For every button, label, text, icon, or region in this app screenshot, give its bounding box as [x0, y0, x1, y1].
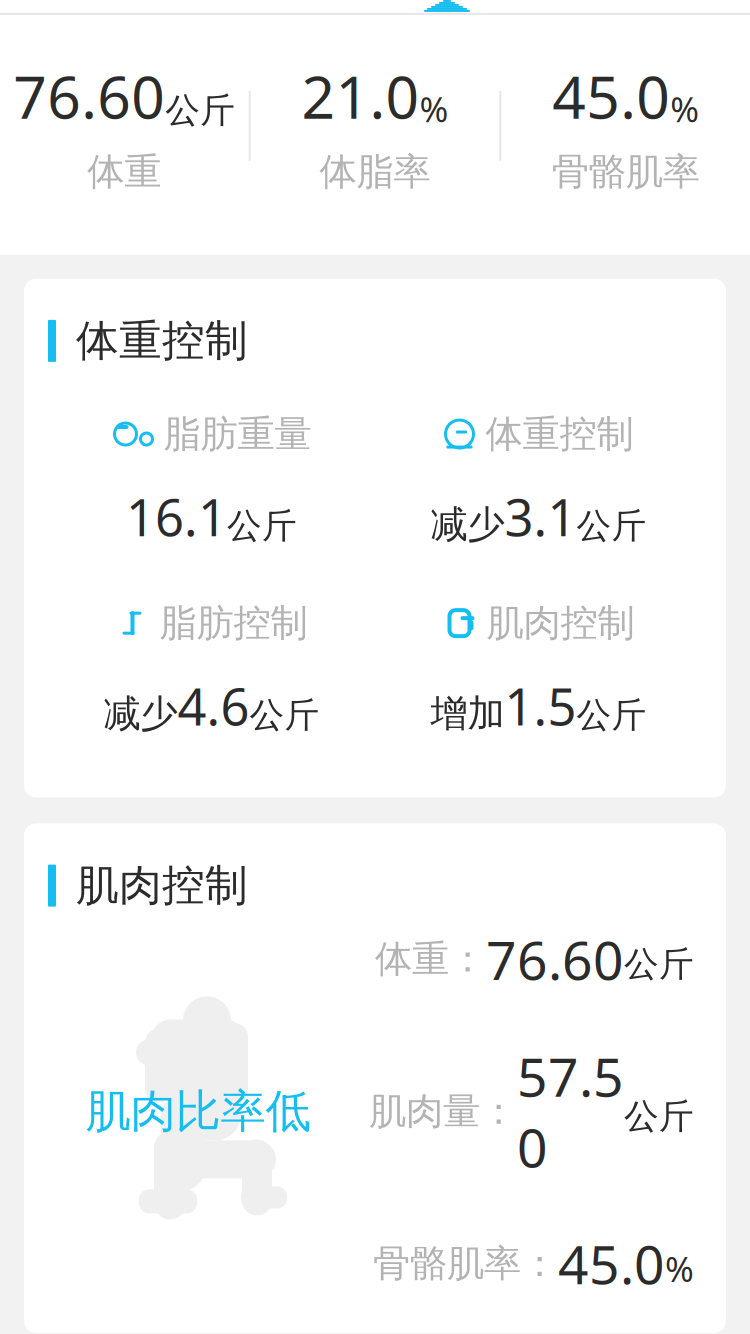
- staticText: 76.60: [486, 924, 624, 995]
- staticText: 公斤: [624, 1095, 694, 1138]
- staticText: 减少: [430, 501, 504, 547]
- staticText: 骨骼肌率：: [373, 1241, 558, 1287]
- staticText: 21.0: [301, 57, 419, 135]
- staticText: 公斤: [165, 89, 235, 132]
- staticText: 脂肪控制: [159, 600, 307, 646]
- staticText: 45.0: [558, 1228, 665, 1299]
- staticText: 16.1: [126, 483, 227, 550]
- staticText: %: [419, 86, 448, 132]
- staticText: 1.5: [504, 672, 576, 739]
- staticText: 45.0: [552, 57, 670, 135]
- staticText: 肌肉比率低: [85, 1084, 310, 1139]
- staticText: 公斤: [624, 943, 694, 985]
- staticText: 3.1: [504, 483, 576, 550]
- staticText: 4.6: [177, 672, 249, 739]
- staticText: 增加: [430, 690, 504, 736]
- staticText: 体重: [87, 149, 161, 195]
- staticText: 体重：: [375, 936, 486, 982]
- staticText: 57.50: [517, 1041, 624, 1182]
- staticText: 减少: [103, 690, 177, 736]
- staticText: 公斤: [576, 505, 646, 547]
- staticText: 骨骼肌率: [552, 149, 700, 195]
- staticText: 体重控制: [485, 411, 633, 457]
- staticText: 体脂率: [319, 149, 430, 195]
- staticText: %: [665, 1246, 694, 1292]
- staticText: 76.60: [13, 57, 165, 135]
- staticText: 肌肉控制: [486, 600, 634, 646]
- staticText: 公斤: [249, 694, 319, 736]
- staticText: 体重控制: [76, 315, 248, 367]
- staticText: %: [670, 86, 699, 132]
- staticText: 脂肪重量: [163, 411, 311, 457]
- staticText: 公斤: [576, 694, 646, 736]
- staticText: 肌肉控制: [76, 859, 248, 912]
- staticText: 肌肉量：: [369, 1088, 517, 1134]
- staticText: 公斤: [227, 505, 297, 547]
